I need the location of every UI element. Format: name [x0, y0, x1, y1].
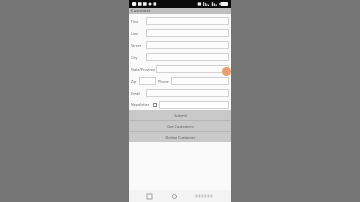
button[interactable] — [146, 53, 229, 61]
staticText: Street — [131, 43, 142, 48]
button[interactable]: Keyboard — [194, 191, 216, 201]
staticText: Get Customers — [167, 124, 194, 129]
staticText: Submit — [174, 113, 187, 118]
button[interactable]: Last — [129, 27, 231, 39]
button[interactable]: Street — [129, 39, 231, 51]
staticText: Zip — [131, 79, 137, 84]
button[interactable]: Home — [169, 191, 179, 201]
staticText: Last — [131, 31, 138, 36]
staticText: Phone — [158, 79, 169, 84]
button[interactable] — [146, 89, 229, 97]
staticText: First — [131, 19, 139, 24]
button[interactable]: City — [129, 51, 231, 63]
button[interactable] — [146, 17, 229, 25]
button[interactable]: Email — [129, 87, 231, 99]
button[interactable]: Zip — [129, 75, 231, 87]
staticText: Newsletter — [131, 102, 150, 107]
button[interactable]: State/Province — [129, 63, 231, 75]
button[interactable]: Submit — [129, 110, 231, 120]
button[interactable] — [146, 41, 229, 49]
button[interactable]: First — [129, 15, 231, 27]
button[interactable] — [159, 101, 229, 109]
staticText: Delete Customer — [165, 135, 196, 140]
button[interactable]: Recent apps — [144, 191, 154, 201]
button[interactable]: Newsletter checkbox — [153, 103, 157, 107]
button[interactable]: Get Customers — [129, 121, 231, 131]
button[interactable]: Newsletter — [129, 99, 231, 110]
button[interactable] — [156, 65, 229, 73]
staticText: City — [131, 55, 138, 60]
staticText: State/Province — [131, 67, 156, 72]
button[interactable] — [146, 29, 229, 37]
button[interactable] — [171, 77, 229, 85]
button[interactable]: Delete Customer — [129, 132, 231, 142]
button[interactable] — [139, 77, 156, 85]
staticText: Customer — [131, 8, 151, 14]
button[interactable]: Accent action — [222, 67, 231, 76]
staticText: Email — [131, 91, 141, 96]
